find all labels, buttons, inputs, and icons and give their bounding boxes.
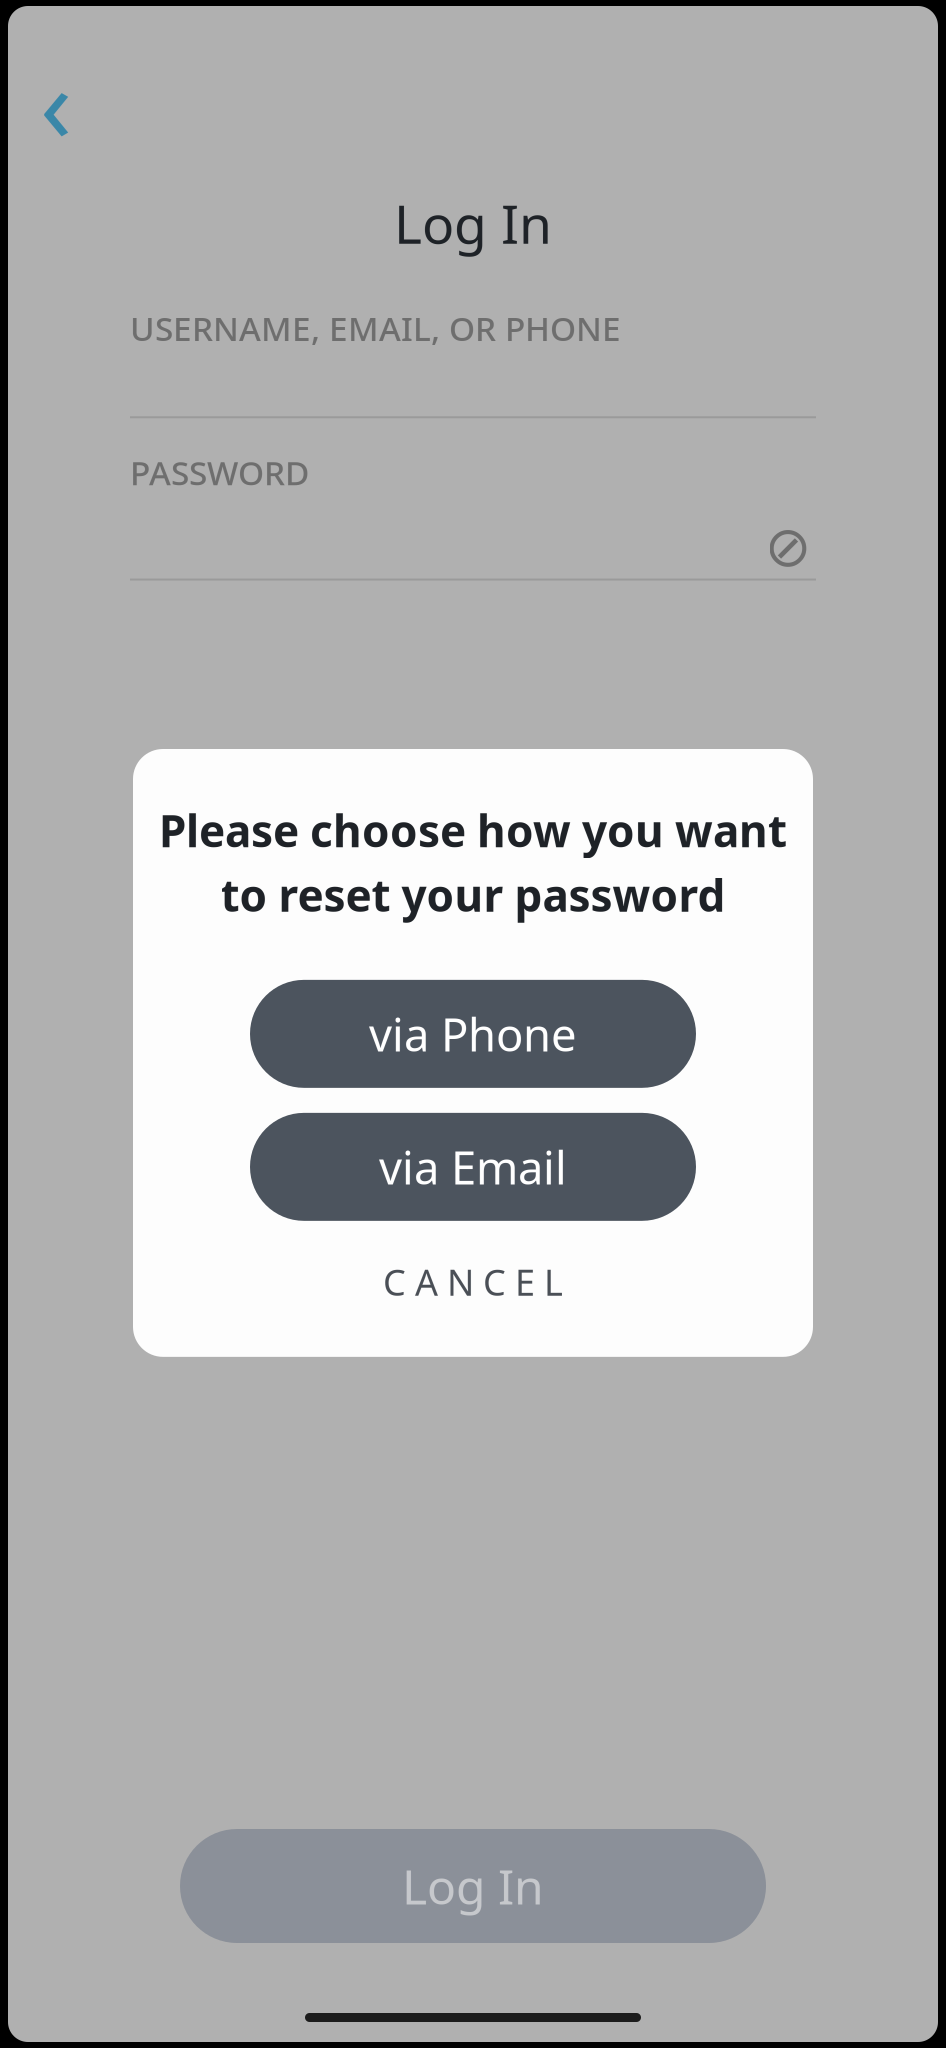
button[interactable]: C A N C E L <box>250 1251 696 1313</box>
staticText: Log In <box>394 188 552 258</box>
staticText: Log In <box>402 1854 544 1918</box>
staticText: ⊘ <box>764 515 811 578</box>
button[interactable]: Back <box>14 60 98 144</box>
button[interactable]: via Email <box>250 1113 696 1221</box>
button[interactable]: Log In <box>180 1829 766 1943</box>
staticText: C A N C E L <box>383 1258 563 1306</box>
staticText: via Phone <box>369 1004 577 1064</box>
staticText: PASSWORD <box>130 450 309 495</box>
staticText: to reset your password <box>220 865 725 924</box>
staticText: ‹ <box>40 33 72 171</box>
staticText: via Email <box>379 1137 567 1197</box>
button[interactable]: via Phone <box>250 980 696 1088</box>
staticText: USERNAME, EMAIL, OR PHONE <box>130 306 621 350</box>
staticText: Please choose how you want <box>159 801 787 859</box>
button[interactable]: Show password <box>760 518 816 574</box>
